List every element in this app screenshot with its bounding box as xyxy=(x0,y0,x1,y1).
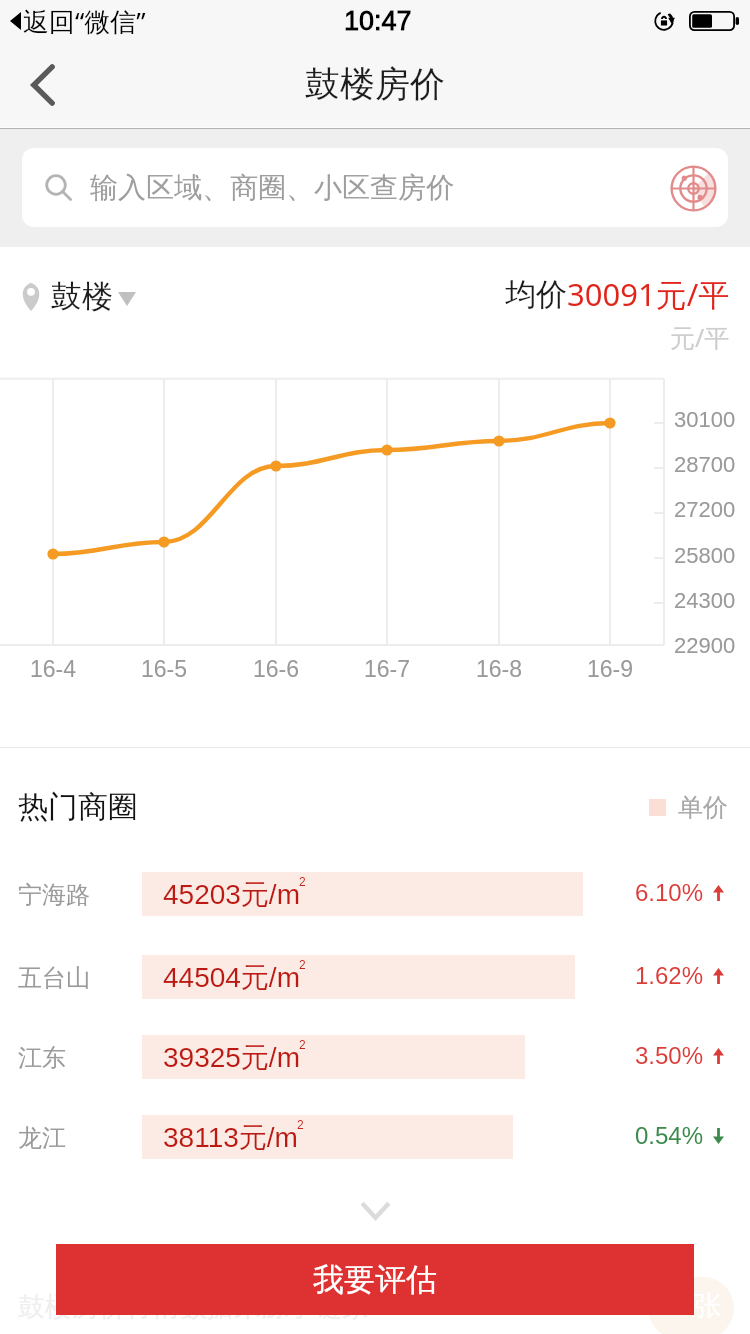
staticText: 45203元/m xyxy=(163,877,300,912)
staticText: 龙江 xyxy=(18,1123,66,1153)
staticText: 2 xyxy=(297,1118,304,1131)
staticText: 28700 xyxy=(674,452,736,477)
staticText: 10:47 xyxy=(344,6,412,36)
staticText: 16-9 xyxy=(587,656,634,682)
staticText: 1.62% xyxy=(635,962,704,989)
staticText: 16-6 xyxy=(253,656,300,682)
button[interactable]: 38113元/m xyxy=(142,1115,513,1159)
staticText: 2 xyxy=(299,1038,306,1051)
staticText: 江东 xyxy=(18,1043,66,1073)
button[interactable]: 44504元/m xyxy=(142,955,575,999)
staticText: 30091元/平 xyxy=(567,273,730,315)
staticText: 元/平 xyxy=(670,320,730,354)
staticText: 16-4 xyxy=(30,656,77,682)
staticText: 38113元/m xyxy=(163,1120,298,1155)
staticText: 五台山 xyxy=(18,963,90,993)
staticText: 22900 xyxy=(674,633,736,658)
staticText: 热门商圈 xyxy=(18,788,138,826)
staticText: 44504元/m xyxy=(163,960,300,995)
staticText: 30100 xyxy=(674,407,736,432)
staticText: 鼓楼房价行情数据来源于链家 xyxy=(18,1290,369,1324)
staticText: 返回“微信” xyxy=(23,3,146,39)
staticText: 16-5 xyxy=(141,656,188,682)
button[interactable]: 39325元/m xyxy=(142,1035,525,1079)
staticText: 2 xyxy=(299,958,306,971)
staticText: 鼓楼房价 xyxy=(305,62,445,106)
staticText: 24300 xyxy=(674,588,736,613)
staticText: 单价 xyxy=(678,792,728,823)
staticText: 鼓楼 xyxy=(51,277,113,316)
staticText: 39325元/m xyxy=(163,1040,300,1075)
staticText: 25800 xyxy=(674,543,736,568)
staticText: 均价 xyxy=(505,275,567,314)
button[interactable]: 45203元/m xyxy=(142,872,583,916)
staticText: 16-7 xyxy=(364,656,411,682)
staticText: 16-8 xyxy=(476,656,523,682)
staticText: 3.50% xyxy=(635,1042,704,1069)
button[interactable]: 输入区域、商圈、小区查房价 xyxy=(22,148,728,227)
button[interactable]: Back xyxy=(0,42,86,128)
staticText: 张 xyxy=(694,1288,722,1323)
staticText: 宁海路 xyxy=(18,880,90,910)
staticText: 输入区域、商圈、小区查房价 xyxy=(90,170,454,205)
staticText: 我要评估 xyxy=(313,1260,437,1299)
staticText: 2 xyxy=(299,875,306,888)
staticText: 6.10% xyxy=(635,879,704,906)
button[interactable]: Radar search xyxy=(652,150,728,226)
button[interactable]: Back to WeChat xyxy=(10,3,146,39)
button[interactable]: 鼓楼 xyxy=(20,277,136,316)
staticText: 0.54% xyxy=(635,1122,704,1149)
button[interactable]: 我要评估 xyxy=(56,1244,694,1315)
button[interactable]: Expand xyxy=(330,1191,420,1229)
staticText: 27200 xyxy=(674,497,736,522)
